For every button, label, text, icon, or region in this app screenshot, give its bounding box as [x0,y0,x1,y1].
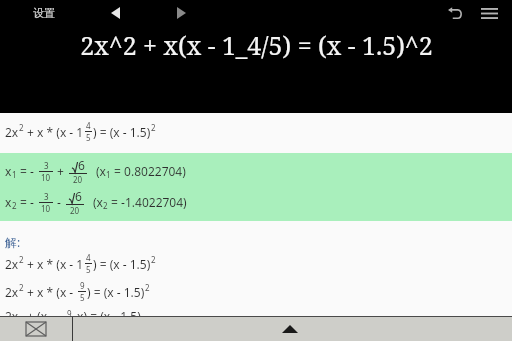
staticText: 2 [145,282,150,293]
staticText: 9 [67,308,72,316]
staticText: 9 [80,280,85,291]
staticText: 2 [151,254,156,265]
staticText: 20 [73,174,83,185]
staticText: 1 [106,169,111,180]
staticText: 解: [5,234,21,250]
staticText: 2x [5,124,19,140]
button[interactable]: Expand [73,317,512,341]
staticText: 2 [151,122,156,133]
button[interactable]: Undo [442,0,468,26]
staticText: 20 [70,205,80,216]
staticText: 设置 [33,6,55,20]
staticText: 2 [103,200,108,211]
staticText: = -1.4022704) [108,194,187,210]
staticText: ) = (x - 1.5) [93,124,151,140]
button[interactable]: Mail [0,317,72,341]
staticText: 2 [19,122,24,133]
staticText: = - [17,163,38,179]
staticText: 4 [86,120,91,131]
staticText: x) = (x - 1.5) [74,308,141,316]
staticText: 6 [78,157,85,173]
button[interactable]: Previous [105,3,125,23]
staticText: 2 [12,200,17,211]
staticText: - [54,194,65,210]
staticText: 4 [86,252,91,263]
staticText: 6 [75,188,82,204]
staticText: 2x^2 + x(x - 1_4/5) = (x - 1.5)^2 [80,28,433,62]
staticText: + (x [24,308,48,316]
button[interactable]: Next [171,3,191,23]
staticText: 3 [44,160,49,171]
button[interactable]: 设置 [31,3,57,23]
staticText: ) = (x - 1.5) [87,284,145,300]
staticText: + x * (x - [24,284,77,300]
staticText: 1 [12,169,17,180]
staticText: + x * (x - 1 [24,124,84,140]
staticText: 10 [41,203,51,214]
staticText: x [5,194,12,210]
staticText: + [54,163,68,179]
button[interactable]: Menu [474,0,504,26]
staticText: 10 [41,172,51,183]
staticText: 2x [5,256,19,272]
staticText: ) = (x - 1.5) [93,256,151,272]
staticText: (x [93,194,103,210]
staticText: + x * (x - 1 [24,256,84,272]
staticText: = 0.8022704) [111,163,186,179]
staticText: 2 [19,282,24,293]
staticText: = - [17,194,38,210]
staticText: x [5,163,12,179]
staticText: 2 [19,254,24,265]
staticText: 5 [80,292,85,303]
staticText: 2x [5,308,19,316]
staticText: 3 [44,191,49,202]
staticText: 2x [5,284,19,300]
staticText: (x [96,163,106,179]
staticText: 5 [86,132,91,143]
staticText: 5 [86,264,91,275]
